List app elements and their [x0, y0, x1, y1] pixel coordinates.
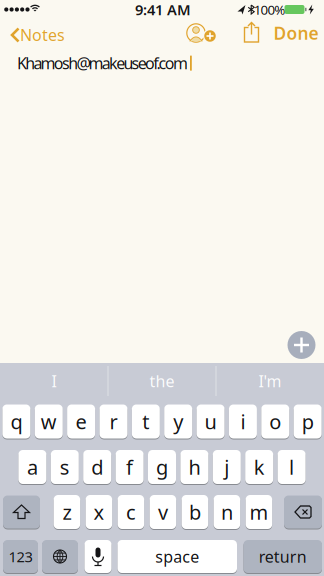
staticText: 100% [254, 1, 285, 18]
staticText: h [188, 454, 200, 480]
staticText: g [156, 454, 168, 480]
staticText: l [289, 454, 294, 480]
staticText: w [41, 408, 57, 435]
staticText: t [142, 408, 149, 435]
staticText: y [173, 408, 183, 435]
staticText: o [269, 408, 281, 435]
staticText: the [149, 370, 174, 392]
staticText: p [302, 408, 314, 435]
staticText: k [254, 454, 265, 480]
staticText: i [240, 408, 245, 435]
staticText: z [62, 499, 71, 525]
staticText: b [189, 499, 201, 525]
staticText: v [158, 499, 168, 525]
staticText: return [259, 546, 307, 567]
staticText: u [205, 408, 217, 435]
staticText: r [109, 408, 117, 435]
staticText: I'm [258, 370, 281, 392]
staticText: I [51, 370, 56, 392]
staticText: j [224, 454, 229, 480]
staticText: e [76, 408, 87, 435]
staticText: Notes [20, 24, 65, 45]
staticText: d [91, 454, 103, 480]
staticText: space [155, 546, 199, 567]
staticText: Khamosh@makeuseof.com [17, 52, 188, 74]
staticText: 123 [8, 547, 32, 566]
staticText: n [221, 499, 233, 525]
staticText: f [126, 454, 133, 480]
staticText: x [93, 499, 104, 525]
staticText: a [27, 454, 38, 480]
staticText: c [126, 499, 136, 525]
staticText: 9:41 AM [135, 0, 191, 19]
staticText: m [249, 499, 268, 525]
staticText: s [60, 454, 70, 480]
staticText: Done [273, 21, 318, 44]
staticText: q [10, 408, 22, 435]
